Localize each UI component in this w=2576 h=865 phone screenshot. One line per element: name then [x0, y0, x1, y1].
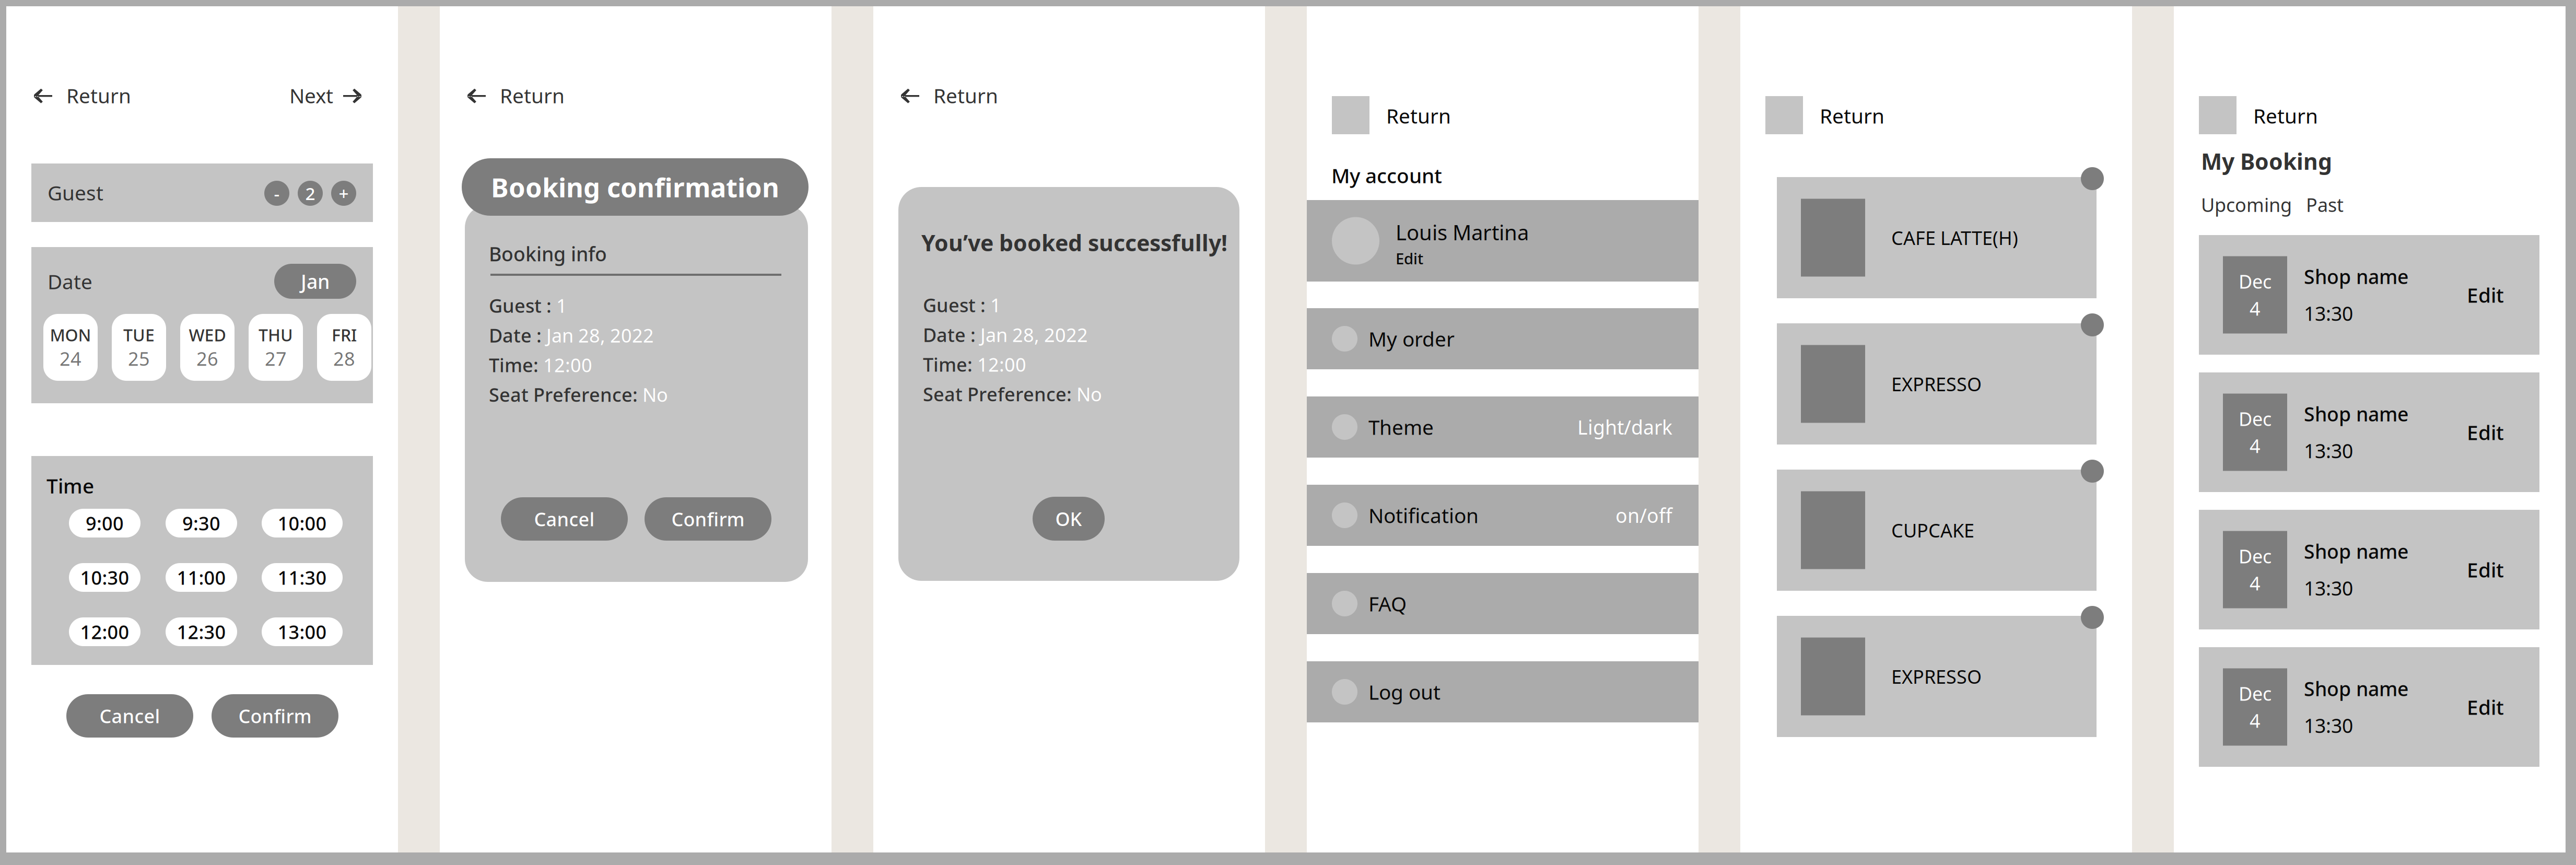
staticText: My order: [1368, 325, 1455, 352]
staticText: CUPCAKE: [1891, 518, 1974, 543]
staticText: 11:00: [177, 565, 226, 590]
staticText: EXPRESSO: [1891, 371, 1982, 396]
button[interactable]: Favourite CAFE LATTE(H): [2081, 167, 2104, 190]
button[interactable]: Confirm: [212, 694, 338, 738]
staticText: 4: [2250, 433, 2261, 458]
button[interactable]: Increase guests: [331, 181, 356, 206]
button[interactable]: Booking confirmation: [462, 158, 809, 216]
staticText: Jan: [301, 268, 330, 294]
button[interactable]: Favourite EXPRESSO: [2081, 606, 2104, 629]
staticText: MON: [50, 324, 91, 346]
button[interactable]: Return: [1332, 96, 1451, 134]
staticText: Shop name: [2304, 538, 2408, 564]
staticText: Return: [66, 82, 131, 109]
staticText: 12:00: [80, 619, 129, 644]
staticText: 4: [2250, 708, 2261, 733]
button[interactable]: EXPRESSO: [1777, 323, 2097, 445]
button[interactable]: MON: [43, 314, 98, 381]
staticText: Confirm: [671, 506, 745, 531]
button[interactable]: 10:00: [262, 509, 343, 537]
button[interactable]: Dec: [2199, 372, 2539, 492]
button[interactable]: THU: [249, 314, 303, 381]
staticText: Shop name: [2304, 263, 2408, 289]
staticText: 13:30: [2304, 300, 2353, 326]
button[interactable]: Return: [2199, 96, 2318, 134]
button[interactable]: Log out: [1307, 661, 1699, 722]
staticText: Confirm: [238, 703, 312, 728]
staticText: 12:30: [177, 619, 226, 644]
staticText: 10:00: [278, 511, 327, 536]
staticText: Time: [46, 472, 94, 499]
button[interactable]: Dec: [2199, 510, 2539, 629]
staticText: 27: [265, 346, 287, 371]
staticText: Log out: [1368, 678, 1441, 705]
button[interactable]: 12:30: [166, 617, 237, 646]
staticText: Shop name: [2304, 401, 2408, 427]
staticText: EXPRESSO: [1891, 664, 1982, 689]
button[interactable]: Dec: [2199, 235, 2539, 355]
staticText: 13:30: [2304, 712, 2353, 738]
staticText: Date: [48, 268, 92, 295]
staticText: Edit: [2467, 419, 2504, 446]
staticText: Edit: [1396, 248, 1423, 269]
button[interactable]: Past: [2306, 192, 2344, 217]
staticText: +: [339, 182, 349, 205]
button[interactable]: EXPRESSO: [1777, 616, 2097, 737]
staticText: 25: [128, 346, 150, 371]
staticText: CAFE LATTE(H): [1891, 225, 2018, 250]
staticText: 12:00: [977, 352, 1026, 377]
staticText: Time:: [489, 352, 538, 377]
staticText: Guest :: [923, 293, 986, 317]
staticText: FRI: [332, 324, 357, 346]
button[interactable]: Louis Martina: [1307, 200, 1699, 282]
staticText: Booking info: [489, 241, 607, 267]
button[interactable]: 11:00: [166, 563, 237, 592]
button[interactable]: Notification: [1307, 485, 1699, 546]
staticText: Return: [1820, 102, 1884, 129]
staticText: Seat Preference:: [923, 382, 1072, 406]
button[interactable]: 10:30: [69, 563, 140, 592]
staticText: Return: [1386, 102, 1451, 129]
staticText: WED: [189, 324, 226, 346]
staticText: 4: [2250, 571, 2261, 596]
button[interactable]: Theme: [1307, 396, 1699, 458]
staticText: 24: [60, 346, 81, 371]
staticText: Edit: [2467, 281, 2504, 308]
button[interactable]: Next: [289, 89, 361, 116]
button[interactable]: Cancel: [501, 497, 628, 541]
button[interactable]: TUE: [112, 314, 166, 381]
staticText: 1: [990, 293, 1001, 317]
staticText: Dec: [2239, 681, 2271, 706]
button[interactable]: Favourite EXPRESSO: [2081, 313, 2104, 336]
button[interactable]: Return: [34, 89, 131, 116]
button[interactable]: FAQ: [1307, 573, 1699, 634]
button[interactable]: CAFE LATTE(H): [1777, 177, 2097, 298]
staticText: Jan 28, 2022: [980, 322, 1088, 347]
button[interactable]: Guest count: [298, 181, 323, 206]
staticText: 13:30: [2304, 438, 2353, 464]
button[interactable]: 9:30: [166, 509, 237, 537]
staticText: Guest :: [489, 293, 552, 318]
button[interactable]: Favourite CUPCAKE: [2081, 460, 2104, 483]
button[interactable]: Dec: [2199, 647, 2539, 767]
button[interactable]: 12:00: [69, 617, 140, 646]
button[interactable]: Return: [467, 89, 565, 116]
button[interactable]: 13:00: [262, 617, 343, 646]
button[interactable]: 11:30: [262, 563, 343, 592]
button[interactable]: Cancel: [66, 694, 193, 738]
button[interactable]: Return: [1765, 96, 1884, 134]
button[interactable]: My order: [1307, 308, 1699, 369]
button[interactable]: CUPCAKE: [1777, 470, 2097, 591]
button[interactable]: OK: [1033, 497, 1105, 541]
button[interactable]: Jan: [274, 264, 356, 299]
button[interactable]: Return: [901, 89, 998, 116]
button[interactable]: Confirm: [645, 497, 771, 541]
staticText: Guest: [48, 179, 103, 206]
button[interactable]: Decrease guests: [264, 181, 289, 206]
staticText: My Booking: [2201, 146, 2332, 176]
button[interactable]: 9:00: [69, 509, 140, 537]
button[interactable]: Upcoming: [2201, 192, 2292, 217]
button[interactable]: WED: [180, 314, 235, 381]
button[interactable]: FRI: [317, 314, 371, 381]
staticText: Upcoming: [2201, 192, 2292, 217]
